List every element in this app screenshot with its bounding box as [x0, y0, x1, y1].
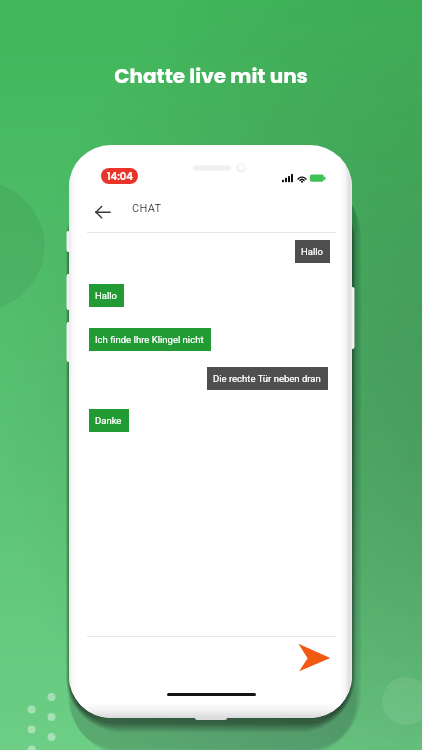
staticText: Die rechte Tür neben dran: [213, 373, 321, 384]
button[interactable]: Hallo: [295, 240, 330, 263]
button[interactable]: Send: [293, 638, 335, 678]
staticText: 14:04: [107, 169, 133, 183]
staticText: Chatte live mit uns: [114, 62, 308, 90]
staticText: Hallo: [301, 246, 323, 257]
button[interactable]: Danke: [89, 409, 129, 432]
staticText: Hallo: [95, 290, 117, 301]
button[interactable]: Ich finde Ihre Klingel nicht: [89, 328, 211, 351]
staticText: CHAT: [132, 202, 162, 215]
staticText: Danke: [95, 415, 122, 426]
staticText: Ich finde Ihre Klingel nicht: [95, 334, 204, 345]
button[interactable]: Die rechte Tür neben dran: [207, 367, 328, 390]
button[interactable]: Hallo: [89, 284, 124, 307]
button[interactable]: Back: [87, 198, 119, 226]
